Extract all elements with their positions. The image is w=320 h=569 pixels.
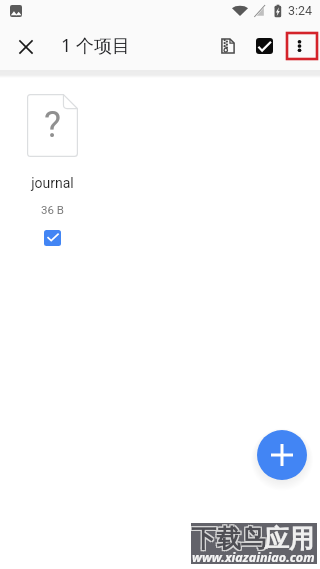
- staticText: 下载鸟: [192, 524, 267, 555]
- button[interactable]: More options: [279, 26, 319, 66]
- staticText: 下载鸟: [191, 524, 265, 555]
- staticText: 下载鸟: [191, 523, 266, 554]
- button[interactable]: ?: [0, 94, 104, 246]
- staticText: 36 B: [41, 203, 64, 216]
- staticText: 下载鸟: [191, 523, 265, 553]
- staticText: ?: [44, 104, 62, 146]
- staticText: www.xiazainiao.com: [192, 549, 315, 564]
- staticText: journal: [31, 175, 74, 191]
- button[interactable]: Add: [257, 430, 307, 480]
- button[interactable]: Selected: [44, 230, 61, 246]
- button[interactable]: Create archive: [208, 26, 248, 66]
- button[interactable]: Select all: [244, 26, 284, 66]
- staticText: 下载鸟: [192, 523, 267, 553]
- staticText: 1 个项目: [61, 33, 130, 58]
- staticText: 应用: [264, 523, 314, 554]
- button[interactable]: Close: [6, 27, 46, 67]
- staticText: 3:24: [288, 3, 313, 18]
